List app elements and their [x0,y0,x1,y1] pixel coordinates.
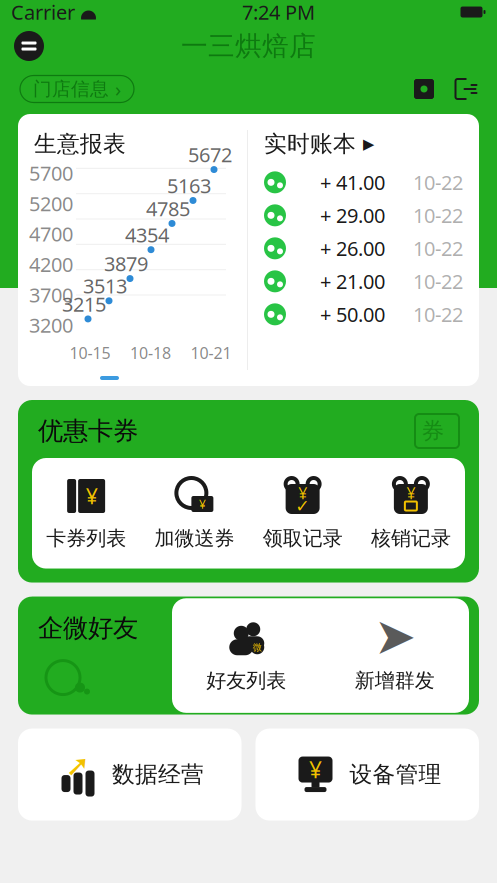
staticText: 3215 [62,291,106,317]
button[interactable]: 微 [172,618,320,693]
staticText: ➚ [65,749,90,782]
button[interactable]: 设置 [411,76,437,102]
staticText: 3879 [104,250,148,277]
staticText: ▶ [363,136,374,152]
staticText: 10-21 [190,342,231,363]
staticText: 4354 [125,221,169,248]
staticText: + 21.00 [320,268,385,295]
staticText: 7:24 PM [242,0,315,25]
staticText: ¥ [406,482,415,504]
staticText: + 50.00 [320,301,385,328]
staticText: ¥ [199,496,206,512]
staticText: + 41.00 [320,169,385,196]
staticText: 生意报表 [34,130,126,158]
button[interactable]: ¥ [255,729,479,821]
staticText: ¥ [86,482,98,510]
staticText: ✓ [295,496,310,516]
staticText: 3700 [29,281,73,308]
staticText: 10-22 [413,301,463,328]
staticText: 5200 [29,190,73,217]
button[interactable]: 切换 [14,31,44,61]
staticText: 4700 [29,221,73,247]
staticText: 企微好友 [38,613,138,644]
staticText: 10-22 [413,235,463,262]
staticText: 核销记录 [371,526,451,551]
button[interactable]: 门店信息 [20,75,134,102]
staticText: ➤ [374,607,416,665]
staticText: 3513 [83,272,127,299]
button[interactable]: 退出登录 [451,76,477,102]
staticText: 3200 [29,312,73,338]
staticText: Carrier [11,0,75,25]
staticText: + 29.00 [320,202,385,229]
staticText: 微 [253,642,262,653]
button[interactable]: ➚ [18,729,241,821]
staticText: 5672 [188,141,232,168]
button[interactable]: ¥ [32,476,140,551]
staticText: 好友列表 [206,668,286,693]
staticText: › [115,76,121,102]
staticText: 4200 [29,251,73,278]
staticText: 10-22 [413,268,463,295]
staticText: 5700 [29,160,73,186]
staticText: 设备管理 [349,761,441,788]
button[interactable]: ¥ [357,476,465,551]
staticText: 门店信息 [33,77,109,100]
button[interactable]: ¥ [140,476,248,551]
staticText: 4785 [146,195,190,222]
staticText: ¥ [309,754,322,785]
staticText: 券 [421,417,444,445]
button[interactable]: ➤ [320,618,469,693]
button[interactable]: 实时账本 [264,130,479,158]
staticText: 领取记录 [263,526,343,551]
staticText: 10-15 [69,342,110,363]
staticText: 5163 [167,172,211,199]
staticText: 实时账本 [264,130,356,158]
staticText: 数据经营 [112,761,204,788]
staticText: 一三烘焙店 [181,30,316,62]
staticText: 10-22 [413,169,463,196]
staticText: 优惠卡券 [38,415,138,446]
staticText: 新增群发 [355,668,435,693]
staticText: 卡券列表 [46,526,126,551]
button[interactable]: ¥ [248,476,357,551]
staticText: ¥ [298,482,307,504]
staticText: 加微送券 [154,526,234,551]
staticText: + 26.00 [320,235,385,262]
staticText: 10-22 [413,202,463,229]
staticText: 10-18 [130,342,171,363]
